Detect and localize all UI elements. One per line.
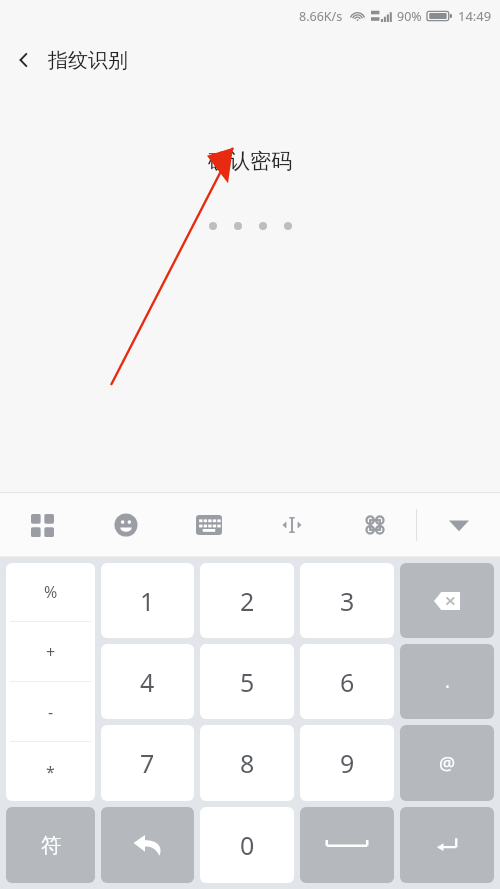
button[interactable]: Back [0, 36, 48, 84]
button[interactable]: Move cursor [250, 493, 333, 557]
staticText: 90% [397, 8, 422, 25]
staticText: 6 [340, 665, 355, 699]
button[interactable]: + [6, 622, 95, 681]
button[interactable]: 1 [101, 563, 194, 638]
button[interactable]: Apps [0, 493, 84, 557]
staticText: 0 [240, 828, 255, 862]
button[interactable]: * [6, 742, 95, 801]
button[interactable]: Emoji [84, 493, 167, 557]
staticText: 8 [240, 746, 255, 780]
staticText: 8.66K/s [299, 8, 343, 25]
button[interactable]: Hide keyboard [417, 493, 500, 557]
button[interactable]: Settings [333, 493, 416, 557]
button[interactable]: 6 [300, 644, 394, 719]
button[interactable]: % [6, 563, 95, 621]
button[interactable]: Undo [101, 807, 194, 883]
button[interactable]: Period [400, 644, 494, 719]
staticText: 指纹识别 [48, 48, 128, 73]
button[interactable]: 2 [200, 563, 294, 638]
button[interactable]: 0 [200, 807, 294, 883]
button[interactable]: Space [300, 807, 394, 883]
button[interactable]: Keyboard layout [167, 493, 250, 557]
button[interactable]: At sign [400, 725, 494, 801]
button[interactable]: Backspace [400, 563, 494, 638]
staticText: 7 [140, 746, 155, 780]
button[interactable]: 5 [200, 644, 294, 719]
staticText: * [46, 761, 55, 783]
button[interactable]: 8 [200, 725, 294, 801]
staticText: 14:49 [458, 7, 492, 25]
staticText: % [44, 581, 58, 603]
staticText: 5 [240, 665, 255, 699]
staticText: 1 [140, 584, 155, 618]
staticText: . [445, 669, 450, 694]
staticText: 符 [41, 833, 61, 858]
staticText: 2 [240, 584, 255, 618]
staticText: 确认密码 [208, 148, 292, 174]
button[interactable]: 3 [300, 563, 394, 638]
button[interactable]: 4 [101, 644, 194, 719]
staticText: 3 [340, 584, 355, 618]
staticText: - [48, 701, 54, 723]
staticText: + [46, 641, 56, 663]
staticText: @ [439, 751, 456, 776]
staticText: 9 [340, 746, 355, 780]
button[interactable]: 7 [101, 725, 194, 801]
button[interactable]: Enter [400, 807, 494, 883]
button[interactable]: 9 [300, 725, 394, 801]
button[interactable]: - [6, 682, 95, 741]
button[interactable]: Symbols [6, 807, 95, 883]
staticText: 4 [140, 665, 155, 699]
